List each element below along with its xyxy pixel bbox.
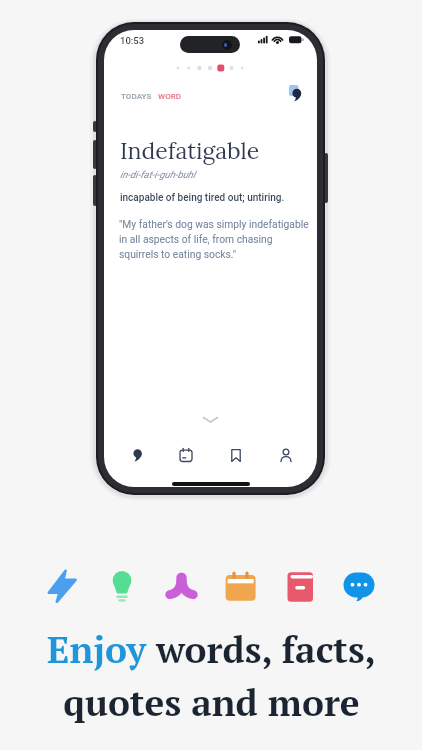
staticText: "My father's dog was simply indefatigabl… [119,218,309,260]
staticText: 10:53 [120,35,145,46]
button[interactable] [165,570,199,604]
button[interactable] [179,445,193,471]
button[interactable] [229,445,243,471]
button[interactable] [283,570,317,604]
button[interactable] [106,570,140,604]
button[interactable] [47,570,81,604]
staticText: in-di-fat-i-guh-buhl [120,169,196,180]
button[interactable] [224,570,258,604]
button[interactable] [342,570,376,604]
staticText: TODAYS [121,92,152,101]
button[interactable] [279,445,293,471]
button[interactable] [129,445,143,471]
staticText: quotes and more [63,678,360,727]
button[interactable]: TODAYS [121,92,152,101]
staticText: Enjoy words, facts, [47,625,376,674]
button[interactable]: WORD [158,92,182,101]
staticText: Indefatigable [120,136,260,165]
staticText: incapable of being tired out; untiring. [120,192,285,204]
staticText: WORD [158,92,182,101]
